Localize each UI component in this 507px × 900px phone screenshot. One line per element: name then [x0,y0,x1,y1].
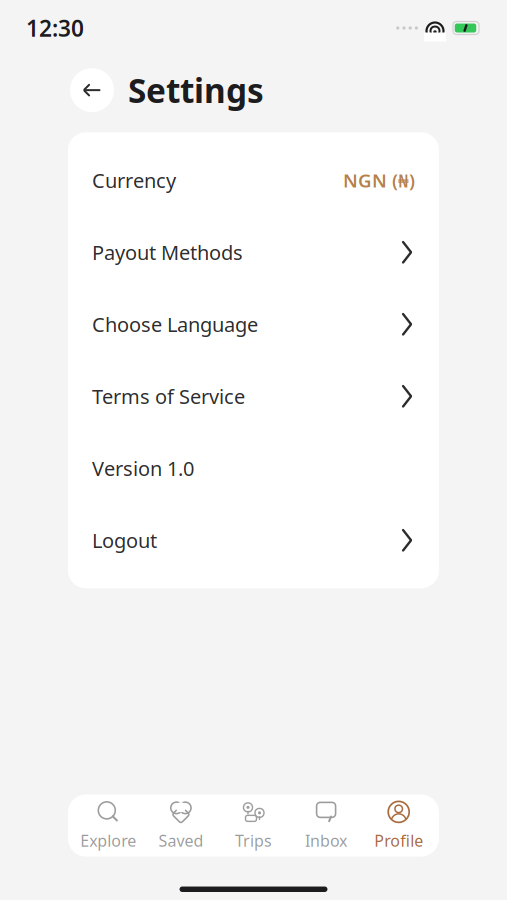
staticText: Profile [374,830,423,851]
button[interactable]: Currency [68,144,439,216]
button[interactable]: Saved [145,790,217,861]
staticText: Explore [80,830,136,851]
staticText: Currency [92,167,176,194]
button[interactable]: Inbox [290,790,362,861]
button[interactable]: Choose Language [68,288,439,360]
staticText: Settings [128,68,264,112]
button[interactable]: Terms of Service [68,360,439,432]
staticText: Payout Methods [92,239,243,266]
staticText: Saved [158,830,203,851]
staticText: Inbox [305,830,347,851]
staticText: Logout [92,527,157,554]
button[interactable]: Trips [217,790,290,861]
button[interactable]: Logout [68,504,439,576]
button[interactable]: Profile [362,790,435,861]
staticText: 12:30 [26,13,84,43]
staticText: Trips [235,830,272,851]
staticText: Version 1.0 [92,455,194,482]
staticText: NGN (₦) [343,168,415,193]
button[interactable]: Payout Methods [68,216,439,288]
button[interactable]: Back [70,68,114,112]
staticText: Choose Language [92,311,258,338]
button[interactable]: Explore [72,790,145,861]
staticText: Terms of Service [92,383,245,410]
button[interactable]: Version 1.0 [68,432,439,504]
